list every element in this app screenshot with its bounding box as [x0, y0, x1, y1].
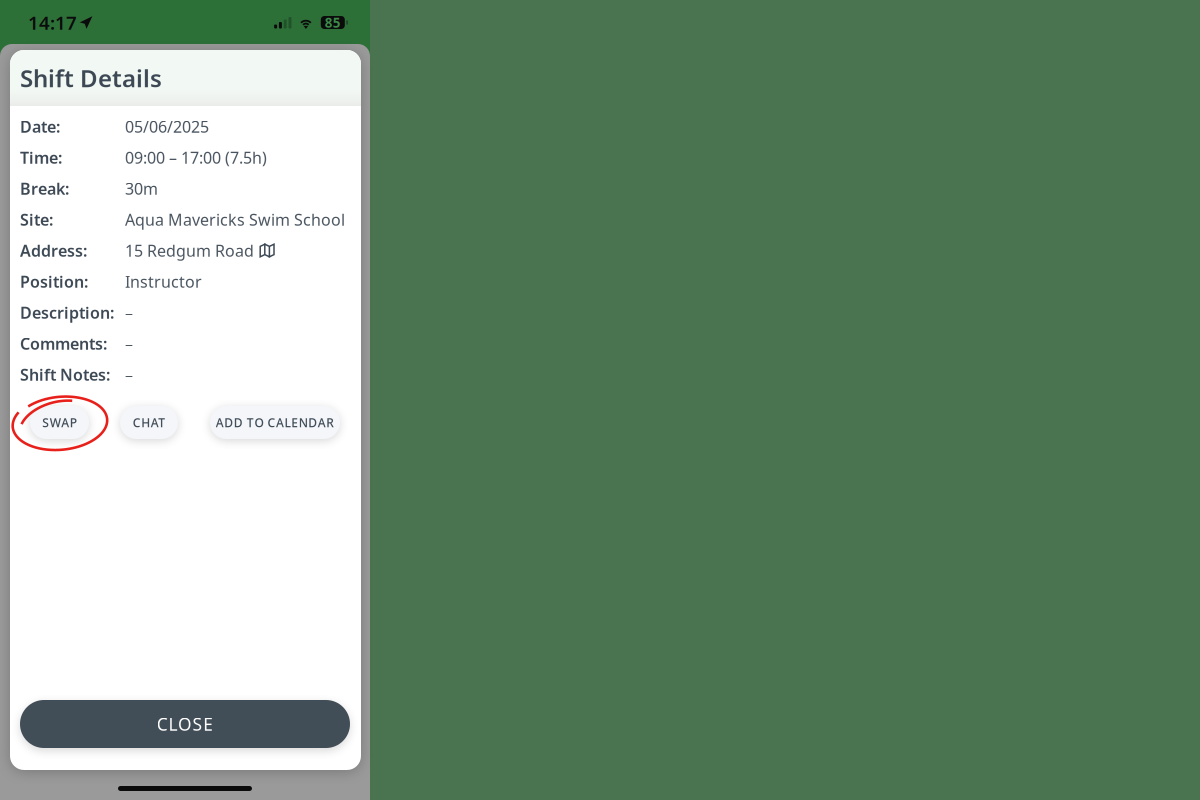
staticText: – — [125, 333, 133, 354]
staticText: Position: — [20, 271, 88, 292]
button[interactable]: ADD TO CALENDAR — [210, 406, 340, 439]
button[interactable]: CLOSE — [20, 700, 350, 748]
staticText: Aqua Mavericks Swim School — [125, 209, 345, 230]
button[interactable]: SWAP — [30, 406, 89, 439]
staticText: Break: — [20, 178, 69, 199]
staticText: Description: — [20, 302, 114, 323]
staticText: 09:00 – 17:00 (7.5h) — [125, 147, 267, 168]
staticText: ADD TO CALENDAR — [216, 414, 334, 430]
staticText: Instructor — [125, 271, 202, 292]
staticText: 85 — [325, 14, 341, 31]
staticText: Date: — [20, 116, 60, 137]
staticText: 15 Redgum Road — [125, 240, 254, 261]
staticText: – — [125, 364, 133, 385]
button[interactable]: Open address in Maps — [259, 243, 275, 258]
staticText: Shift Notes: — [20, 364, 110, 385]
staticText: CHAT — [133, 414, 165, 430]
staticText: CLOSE — [157, 712, 213, 735]
staticText: Comments: — [20, 333, 107, 354]
staticText: Site: — [20, 209, 53, 230]
staticText: – — [125, 302, 133, 323]
staticText: 14:17 — [28, 10, 77, 35]
staticText: Shift Details — [20, 62, 162, 94]
button[interactable]: CHAT — [120, 406, 178, 439]
staticText: 30m — [125, 178, 158, 199]
staticText: Time: — [20, 147, 62, 168]
staticText: Address: — [20, 240, 87, 261]
staticText: SWAP — [42, 414, 77, 430]
staticText: 05/06/2025 — [125, 116, 209, 137]
